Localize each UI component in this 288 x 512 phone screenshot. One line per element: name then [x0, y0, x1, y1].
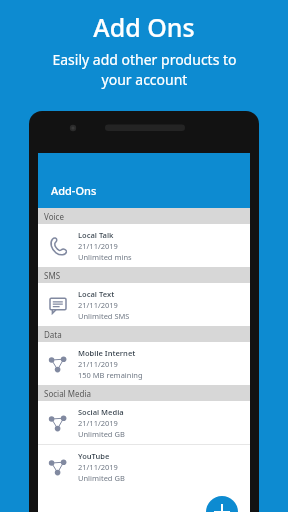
staticText: Voice: [44, 211, 64, 222]
staticText: Unlimited SMS: [78, 311, 130, 321]
staticText: 21/11/2019: [78, 359, 118, 369]
staticText: 21/11/2019: [78, 300, 118, 310]
staticText: Local Talk: [78, 230, 114, 240]
staticText: Add-Ons: [51, 183, 97, 198]
staticText: Add Ons: [93, 10, 195, 44]
staticText: 21/11/2019: [78, 241, 118, 251]
staticText: 150 MB remaining: [78, 370, 143, 380]
staticText: YouTube: [78, 451, 110, 461]
staticText: Unlimited GB: [78, 429, 125, 439]
staticText: Social Media: [78, 407, 124, 417]
button[interactable]: Local Talk: [38, 224, 250, 267]
staticText: SMS: [44, 270, 61, 281]
button[interactable]: Add-Ons: [38, 153, 250, 208]
staticText: 21/11/2019: [78, 418, 118, 428]
button[interactable]: Add add-on: [206, 496, 238, 512]
staticText: Social Media: [44, 388, 92, 399]
button[interactable]: Social Media: [38, 401, 250, 444]
button[interactable]: YouTube: [38, 445, 250, 488]
staticText: Unlimited mins: [78, 252, 132, 262]
staticText: Easily add other products to your accoun…: [52, 50, 237, 89]
button[interactable]: Mobile Internet: [38, 342, 250, 385]
staticText: Data: [44, 329, 62, 340]
staticText: Mobile Internet: [78, 348, 136, 358]
staticText: 21/11/2019: [78, 462, 118, 472]
staticText: Unlimited GB: [78, 473, 125, 483]
staticText: Local Text: [78, 289, 115, 299]
button[interactable]: Local Text: [38, 283, 250, 326]
